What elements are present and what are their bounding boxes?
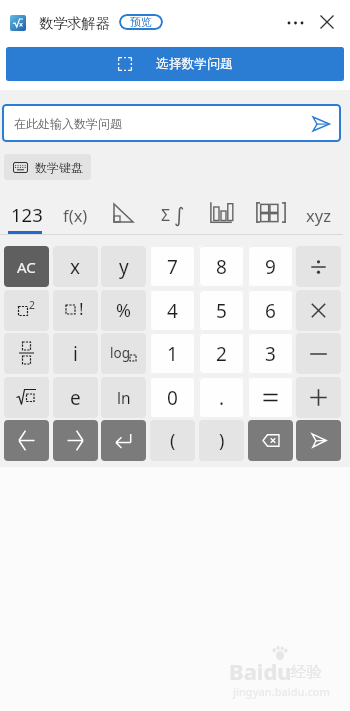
button[interactable]: 5 <box>199 290 244 331</box>
staticText: 2 <box>216 341 227 367</box>
button[interactable]: 8 <box>199 246 244 287</box>
button[interactable] <box>101 196 146 233</box>
staticText: AC <box>17 257 36 277</box>
button[interactable]: 数学键盘 <box>4 154 91 180</box>
staticText: 经验 <box>291 662 322 682</box>
button[interactable]: xyz <box>296 196 341 233</box>
button[interactable] <box>286 20 306 26</box>
button[interactable] <box>53 420 98 461</box>
staticText: log <box>110 344 130 362</box>
staticText: ∫ <box>174 203 185 226</box>
staticText: 6 <box>265 298 276 324</box>
staticText: i <box>73 341 78 367</box>
staticText: 9 <box>265 254 276 280</box>
button[interactable] <box>248 377 293 418</box>
staticText: 预览 <box>130 15 152 29</box>
button[interactable]: y <box>101 246 146 287</box>
staticText: y <box>119 254 129 280</box>
button[interactable]: 123 <box>4 196 49 233</box>
staticText: ) <box>219 428 225 453</box>
button[interactable] <box>248 196 293 233</box>
button[interactable]: log <box>101 333 146 374</box>
staticText: 8 <box>216 254 227 280</box>
staticText: 在此处输入数学问题 <box>14 116 122 131</box>
button[interactable]: 1 <box>150 333 195 374</box>
staticText: 数学键盘 <box>35 160 83 175</box>
button[interactable]: 0 <box>150 377 195 418</box>
staticText: f(x) <box>63 204 88 226</box>
button[interactable] <box>296 333 341 374</box>
button[interactable] <box>296 420 341 461</box>
button[interactable] <box>4 377 49 418</box>
button[interactable]: 4 <box>150 290 195 331</box>
staticText: ln <box>117 387 131 408</box>
button[interactable]: i <box>53 333 98 374</box>
button[interactable] <box>4 333 49 374</box>
button[interactable]: 2 <box>199 333 244 374</box>
button[interactable]: 6 <box>248 290 293 331</box>
button[interactable]: 2 <box>4 290 49 331</box>
button[interactable]: 选择数学问题 <box>6 47 344 81</box>
button[interactable] <box>248 420 293 461</box>
button[interactable] <box>296 290 341 331</box>
staticText: 3 <box>265 341 276 367</box>
staticText: ! <box>79 297 84 320</box>
button[interactable] <box>4 420 49 461</box>
button[interactable]: 9 <box>248 246 293 287</box>
staticText: 4 <box>167 298 178 324</box>
button[interactable]: Σ <box>150 196 195 233</box>
staticText: ( <box>170 428 176 453</box>
button[interactable]: 预览 <box>119 14 163 30</box>
button[interactable] <box>320 15 334 29</box>
staticText: e <box>70 385 81 411</box>
button[interactable]: ) <box>199 420 244 461</box>
button[interactable]: ln <box>101 377 146 418</box>
button[interactable] <box>199 196 244 233</box>
button[interactable]: x <box>53 246 98 287</box>
button[interactable]: ( <box>150 420 195 461</box>
button[interactable]: 7 <box>150 246 195 287</box>
staticText: Σ <box>161 204 171 226</box>
button[interactable]: 在此处输入数学问题 <box>2 104 341 142</box>
staticText: % <box>116 298 131 323</box>
staticText: 123 <box>11 202 43 227</box>
button[interactable] <box>296 377 341 418</box>
button[interactable]: % <box>101 290 146 331</box>
button[interactable]: . <box>199 377 244 418</box>
button[interactable]: 3 <box>248 333 293 374</box>
staticText: 5 <box>216 298 227 324</box>
staticText: . <box>219 385 225 411</box>
staticText: jingyan.baidu.com <box>233 684 330 699</box>
staticText: 数学求解器 <box>39 14 110 32</box>
staticText: x <box>70 254 81 280</box>
staticText: 2 <box>29 298 36 312</box>
button[interactable]: f(x) <box>53 196 98 233</box>
button[interactable] <box>101 420 146 461</box>
staticText: xyz <box>306 204 331 226</box>
staticText: Baidu <box>229 656 292 686</box>
button[interactable]: e <box>53 377 98 418</box>
staticText: 7 <box>167 254 178 280</box>
button[interactable] <box>296 246 341 287</box>
button[interactable]: ! <box>53 290 98 331</box>
staticText: 选择数学问题 <box>156 56 233 72</box>
button[interactable]: AC <box>4 246 49 287</box>
staticText: 1 <box>167 341 178 367</box>
staticText: 0 <box>167 385 178 411</box>
